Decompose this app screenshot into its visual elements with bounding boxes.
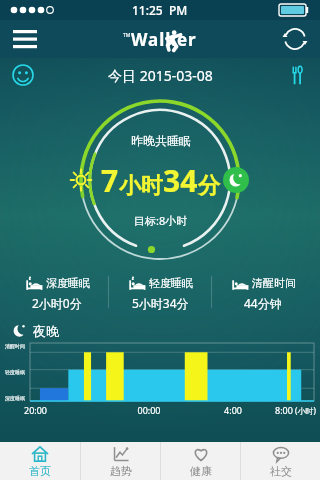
staticText: 7 <box>101 160 119 201</box>
staticText: 社交 <box>270 464 292 478</box>
staticText: 轻度睡眠 <box>5 369 25 375</box>
staticText: 今日 2015-03-08 <box>108 66 213 85</box>
staticText: 深度睡眠 <box>46 276 90 290</box>
button[interactable]: Menu <box>6 20 44 58</box>
staticText: TM <box>123 32 131 39</box>
button[interactable]: Mood <box>8 60 38 90</box>
button[interactable]: 深度睡眠 <box>6 274 108 311</box>
button[interactable]: 首页 <box>0 442 80 480</box>
staticText: 4:00 <box>191 404 275 416</box>
staticText: 11:25 PM <box>132 2 188 18</box>
staticText: 目标:8小时 <box>134 213 188 228</box>
staticText: 夜晚 <box>33 323 59 339</box>
button[interactable]: 趋势 <box>81 442 160 480</box>
staticText: 20:00 <box>24 404 107 416</box>
staticText: 2小时0分 <box>32 295 82 311</box>
staticText: 昨晚共睡眠 <box>131 133 191 148</box>
button[interactable]: 轻度睡眠 <box>109 274 211 311</box>
button[interactable]: 社交 <box>241 442 320 480</box>
button[interactable]: Sync <box>278 22 312 56</box>
staticText: 34 <box>163 160 198 201</box>
button[interactable]: Food <box>282 60 312 90</box>
staticText: 清醒时间 <box>5 343 25 349</box>
staticText: 清醒时间 <box>252 276 296 290</box>
staticText: 8:00 <box>275 404 293 416</box>
staticText: 5小时34分 <box>132 295 189 311</box>
staticText: 小时 <box>119 172 163 200</box>
staticText: 健康 <box>190 464 212 478</box>
button[interactable]: 健康 <box>161 442 240 480</box>
staticText: 首页 <box>29 464 51 478</box>
button[interactable]: 清醒时间 <box>212 274 314 311</box>
staticText: (小时) <box>293 405 316 416</box>
staticText: 趋势 <box>110 464 132 478</box>
staticText: 分 <box>198 172 220 200</box>
staticText: 00:00 <box>107 404 191 416</box>
staticText: 深度睡眠 <box>5 395 25 401</box>
staticText: 轻度睡眠 <box>149 276 193 290</box>
staticText: Walker <box>131 28 197 51</box>
staticText: 44分钟 <box>244 295 282 311</box>
